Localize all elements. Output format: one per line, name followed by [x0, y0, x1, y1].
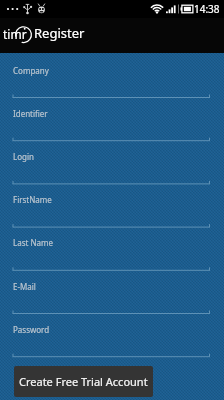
staticText: Last Name	[13, 237, 54, 248]
staticText: FirstName	[13, 194, 52, 205]
staticText: Identifier	[13, 108, 48, 119]
staticText: Register	[34, 24, 85, 42]
staticText: E-Mail	[13, 281, 36, 292]
staticText: timr	[3, 26, 27, 42]
staticText: Login	[13, 151, 34, 162]
staticText: Create Free Trial Account	[19, 374, 148, 389]
staticText: Password	[13, 324, 50, 335]
staticText: 14:38	[194, 2, 220, 16]
staticText: Company	[13, 65, 49, 76]
button[interactable]: Create Free Trial Account	[14, 366, 153, 397]
